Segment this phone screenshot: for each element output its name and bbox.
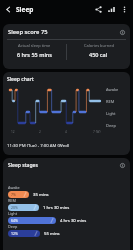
- staticText: Deep: [106, 123, 116, 128]
- staticText: 20%: [11, 205, 18, 210]
- button[interactable]: Sleep chart: [3, 72, 130, 155]
- button[interactable]: [95, 6, 102, 13]
- button[interactable]: [120, 30, 125, 35]
- staticText: 2: [39, 130, 41, 134]
- staticText: 12: [11, 130, 15, 134]
- staticText: Sleep stages: [8, 162, 38, 169]
- staticText: Actual sleep time: [18, 43, 51, 48]
- staticText: Awake: [106, 87, 119, 92]
- button[interactable]: Awake: [8, 185, 125, 198]
- staticText: Sleep score 75: [8, 28, 48, 36]
- button[interactable]: Sleep score 75: [3, 24, 130, 69]
- button[interactable]: Deep: [8, 224, 125, 237]
- staticText: REM: [106, 99, 115, 104]
- button[interactable]: [121, 6, 128, 13]
- staticText: Sleep: [16, 5, 34, 14]
- staticText: 11:30 PM (Tue) - 7:00 AM (Wed): [7, 142, 70, 148]
- staticText: Awake: [8, 185, 20, 190]
- button[interactable]: [120, 163, 125, 168]
- staticText: 450 cal: [89, 51, 108, 58]
- staticText: Deep: [8, 224, 18, 229]
- staticText: 4 hrs 30 mins: [60, 218, 87, 224]
- button[interactable]: REM: [8, 198, 125, 211]
- staticText: 12%: [11, 231, 18, 236]
- staticText: 55 mins: [44, 231, 60, 237]
- staticText: 7 (W): [93, 130, 101, 134]
- staticText: Calories burned: [84, 43, 114, 48]
- staticText: Light: [106, 111, 116, 116]
- staticText: 64%: [11, 218, 18, 223]
- staticText: 1 hrs 30 mins: [43, 205, 70, 211]
- staticText: 7%: [11, 192, 16, 197]
- staticText: Light: [8, 211, 18, 216]
- button[interactable]: [5, 6, 12, 13]
- staticText: 35 mins: [33, 192, 49, 198]
- button[interactable]: [108, 6, 115, 13]
- staticText: 4: [65, 130, 67, 134]
- staticText: Sleep chart: [7, 76, 34, 83]
- button[interactable]: Light: [8, 211, 125, 224]
- staticText: 6 hrs 55 mins: [17, 51, 52, 58]
- staticText: REM: [8, 198, 16, 203]
